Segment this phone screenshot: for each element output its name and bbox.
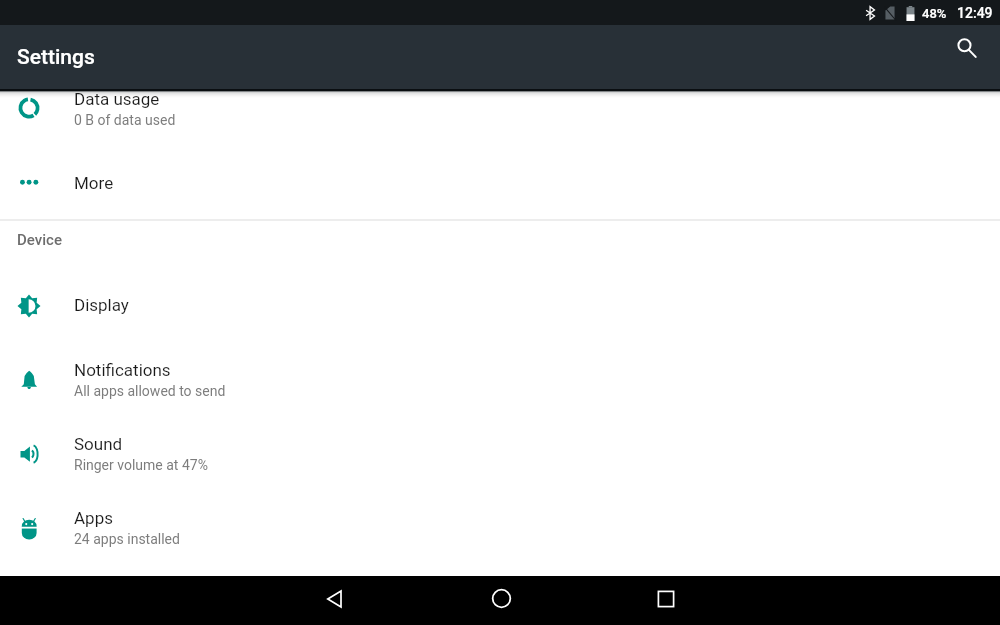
staticText: All apps allowed to send	[74, 383, 226, 399]
button[interactable]: Sound	[0, 414, 1000, 488]
staticText: 48%	[922, 6, 947, 21]
staticText: Data usage	[74, 89, 160, 109]
button[interactable]: More	[0, 146, 1000, 219]
staticText: Device	[17, 231, 62, 249]
staticText: Notifications	[74, 360, 171, 380]
button[interactable]: Display	[0, 272, 1000, 340]
staticText: 24 apps installed	[74, 531, 180, 547]
staticText: Sound	[74, 434, 123, 454]
staticText: Apps	[74, 508, 113, 528]
button[interactable]: Home	[475, 574, 527, 623]
staticText: Ringer volume at 47%	[74, 457, 208, 473]
button[interactable]: Back	[309, 574, 361, 623]
staticText: More	[74, 173, 114, 193]
button[interactable]: Search	[945, 26, 989, 70]
staticText: 12:49	[957, 5, 993, 21]
button[interactable]: Notifications	[0, 340, 1000, 414]
staticText: Settings	[17, 45, 95, 70]
staticText: 0 B of data used	[74, 112, 176, 128]
button[interactable]: Data usage	[0, 89, 1000, 146]
button[interactable]: Recent apps	[640, 574, 692, 623]
button[interactable]: Apps	[0, 488, 1000, 562]
staticText: Display	[74, 295, 129, 315]
